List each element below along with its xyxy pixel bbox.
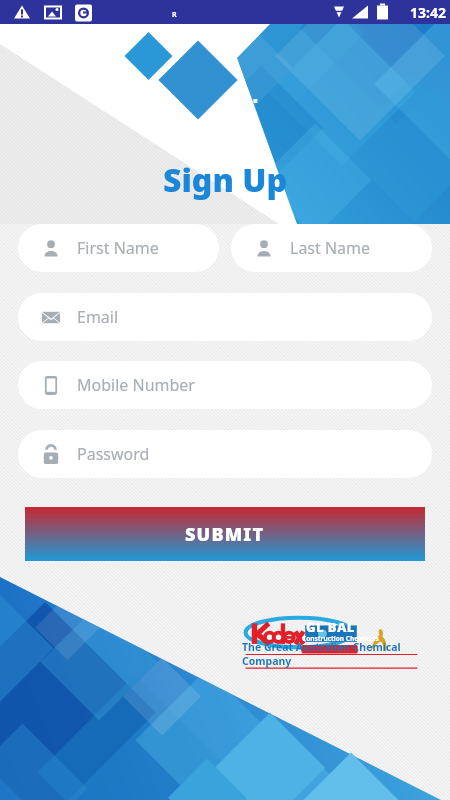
staticText: Sign Up [0,158,450,202]
staticText: R [172,10,177,20]
staticText: 13:42 [410,3,446,22]
staticText: Construction Chemicals [302,634,379,643]
button[interactable]: Email [18,293,432,341]
staticText: Email [77,306,119,328]
button[interactable]: First Name [18,224,219,272]
other: Kodex Global logo [242,612,420,669]
button[interactable]: Mobile Number [18,361,432,409]
staticText: First Name [77,237,159,259]
staticText: Last Name [290,237,371,259]
button[interactable]: Password [18,430,432,478]
button[interactable]: SUBMIT [25,507,425,561]
staticText: SUBMIT [185,522,265,547]
staticText: Password [77,443,150,465]
staticText: Mobile Number [77,374,195,396]
staticText: The Great Australian Chemical Company [242,640,420,668]
staticText: GL BAL [306,618,355,636]
button[interactable]: Last Name [231,224,432,272]
